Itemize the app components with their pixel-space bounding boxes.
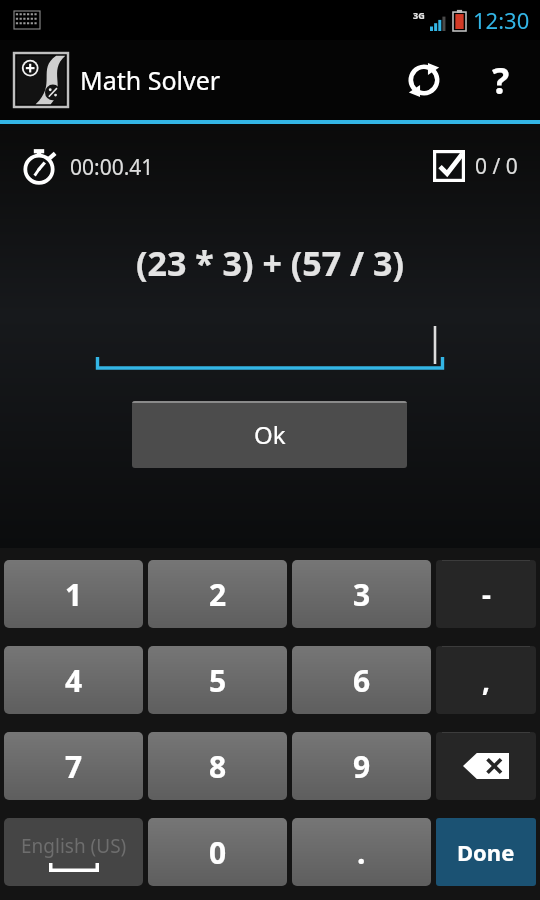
- staticText: (23 * 3) + (57 / 3): [136, 240, 404, 286]
- button[interactable]: -: [436, 560, 536, 628]
- staticText: 5: [209, 660, 227, 701]
- staticText: ,: [482, 661, 490, 699]
- staticText: 8: [209, 746, 227, 787]
- staticText: 7: [65, 746, 83, 787]
- button[interactable]: [96, 320, 444, 372]
- staticText: Done: [457, 837, 515, 867]
- staticText: English (US): [21, 833, 127, 859]
- staticText: Ok: [254, 418, 286, 451]
- staticText: 9: [353, 746, 371, 787]
- button[interactable]: 1: [4, 560, 143, 628]
- staticText: 00:00.41: [70, 153, 154, 182]
- staticText: Math Solver: [80, 63, 221, 97]
- button[interactable]: 6: [292, 646, 431, 714]
- button[interactable]: 9: [292, 732, 431, 800]
- button[interactable]: 7: [4, 732, 143, 800]
- button[interactable]: Help: [462, 40, 540, 120]
- staticText: 6: [353, 660, 371, 701]
- staticText: 3G: [413, 9, 425, 21]
- button[interactable]: 4: [4, 646, 143, 714]
- button[interactable]: Ok: [132, 401, 407, 468]
- staticText: 2: [209, 574, 227, 615]
- button[interactable]: Done: [436, 818, 536, 886]
- button[interactable]: 3: [292, 560, 431, 628]
- staticText: 1: [65, 574, 83, 615]
- button[interactable]: Backspace: [436, 732, 536, 800]
- staticText: 0 / 0: [475, 152, 518, 181]
- staticText: 0: [209, 832, 227, 873]
- staticText: 3: [353, 574, 371, 615]
- staticText: 12:30: [473, 5, 530, 35]
- staticText: 4: [65, 660, 83, 701]
- button[interactable]: ,: [436, 646, 536, 714]
- staticText: ?: [492, 56, 510, 105]
- button[interactable]: English (US): [4, 818, 143, 886]
- staticText: -: [482, 575, 491, 613]
- button[interactable]: 8: [148, 732, 287, 800]
- button[interactable]: 5: [148, 646, 287, 714]
- button[interactable]: 0: [148, 818, 287, 886]
- button[interactable]: .: [292, 818, 431, 886]
- staticText: .: [357, 832, 366, 873]
- button[interactable]: 2: [148, 560, 287, 628]
- button[interactable]: Refresh: [386, 40, 462, 120]
